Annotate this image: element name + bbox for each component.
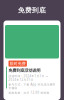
staticText: 免费到底活动说明 [8, 68, 40, 73]
staticText: 参与方式：下载 App 并完成注册即可领取 [8, 83, 55, 90]
staticText: 活动时间：2024年1月1日 — 2024年12月31日 [8, 74, 48, 81]
staticText: 奖励发放：次日 12:00 前到账 [8, 91, 49, 94]
staticText: 限时免费 [10, 61, 26, 66]
staticText: 免费到底 [18, 6, 46, 14]
